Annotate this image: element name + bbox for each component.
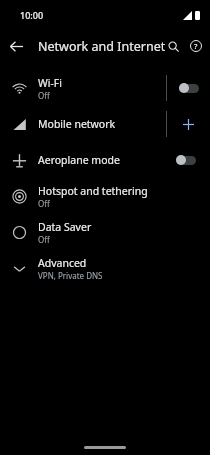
- staticText: Network and Internet: [38, 38, 166, 55]
- button[interactable]: Mobile network: [0, 106, 210, 142]
- staticText: Data Saver: [38, 220, 92, 234]
- staticText: Hotspot and tethering: [38, 184, 148, 198]
- button[interactable]: Hotspot and tethering: [0, 178, 210, 214]
- staticText: Off: [38, 90, 50, 101]
- button[interactable]: Aeroplane mode: [0, 142, 210, 178]
- button[interactable]: Aeroplane mode toggle: [162, 142, 210, 178]
- staticText: Off: [38, 234, 50, 245]
- button[interactable]: Search: [162, 35, 184, 57]
- button[interactable]: Data Saver: [0, 214, 210, 250]
- staticText: Mobile network: [38, 117, 116, 131]
- button[interactable]: Help: [185, 35, 207, 57]
- staticText: 10:00: [20, 9, 44, 21]
- button[interactable]: Add network: [167, 106, 210, 142]
- button[interactable]: Wi-Fi: [0, 70, 210, 106]
- staticText: Wi-Fi: [38, 76, 63, 90]
- staticText: Advanced: [38, 256, 87, 270]
- staticText: VPN, Private DNS: [38, 270, 103, 281]
- staticText: Aeroplane mode: [38, 153, 120, 167]
- staticText: ?: [194, 41, 198, 51]
- button[interactable]: Back: [4, 34, 28, 58]
- button[interactable]: Wi-Fi toggle: [167, 70, 210, 106]
- button[interactable]: Advanced: [0, 250, 210, 286]
- staticText: Off: [38, 198, 50, 209]
